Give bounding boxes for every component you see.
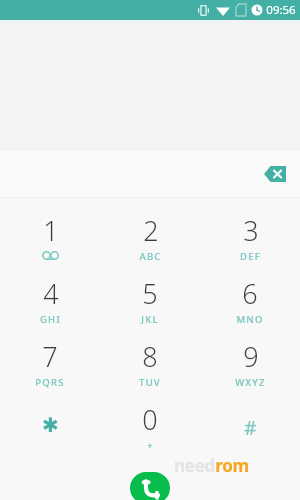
staticText: 8 [142, 338, 158, 375]
button[interactable]: 3 [200, 210, 300, 273]
staticText: DEF [240, 250, 261, 263]
button[interactable]: 1 [0, 210, 100, 273]
button[interactable]: Backspace [260, 161, 290, 187]
button[interactable]: 9 [200, 336, 300, 399]
button[interactable]: # [200, 399, 300, 462]
staticText: TUV [139, 376, 161, 389]
staticText: 0 [142, 401, 158, 438]
staticText: ✱ [42, 413, 59, 436]
staticText: 3 [243, 212, 259, 249]
button[interactable]: 0 [100, 399, 200, 462]
button[interactable]: 2 [100, 210, 200, 273]
staticText: 1 [43, 212, 59, 249]
staticText: 09:56 [266, 2, 296, 18]
staticText: need [174, 454, 215, 477]
button[interactable]: 5 [100, 273, 200, 336]
staticText: PQRS [35, 376, 65, 389]
staticText: rom [215, 454, 249, 477]
staticText: 9 [243, 338, 259, 375]
staticText: MNO [236, 313, 264, 326]
staticText: 7 [42, 338, 58, 375]
staticText: 2 [143, 212, 159, 249]
button[interactable]: 7 [0, 336, 100, 399]
staticText: WXYZ [235, 376, 266, 389]
staticText: 4 [43, 275, 59, 312]
button[interactable]: 4 [0, 273, 100, 336]
button[interactable]: 8 [100, 336, 200, 399]
button[interactable]: 6 [200, 273, 300, 336]
staticText: # [244, 415, 257, 441]
button[interactable]: ✱ [0, 399, 100, 462]
staticText: ABC [139, 250, 162, 263]
staticText: 6 [242, 275, 258, 312]
staticText: + [147, 439, 154, 452]
button[interactable]: Call [130, 472, 170, 500]
staticText: 5 [142, 275, 158, 312]
staticText: GHI [40, 313, 61, 326]
staticText: JKL [141, 313, 159, 326]
